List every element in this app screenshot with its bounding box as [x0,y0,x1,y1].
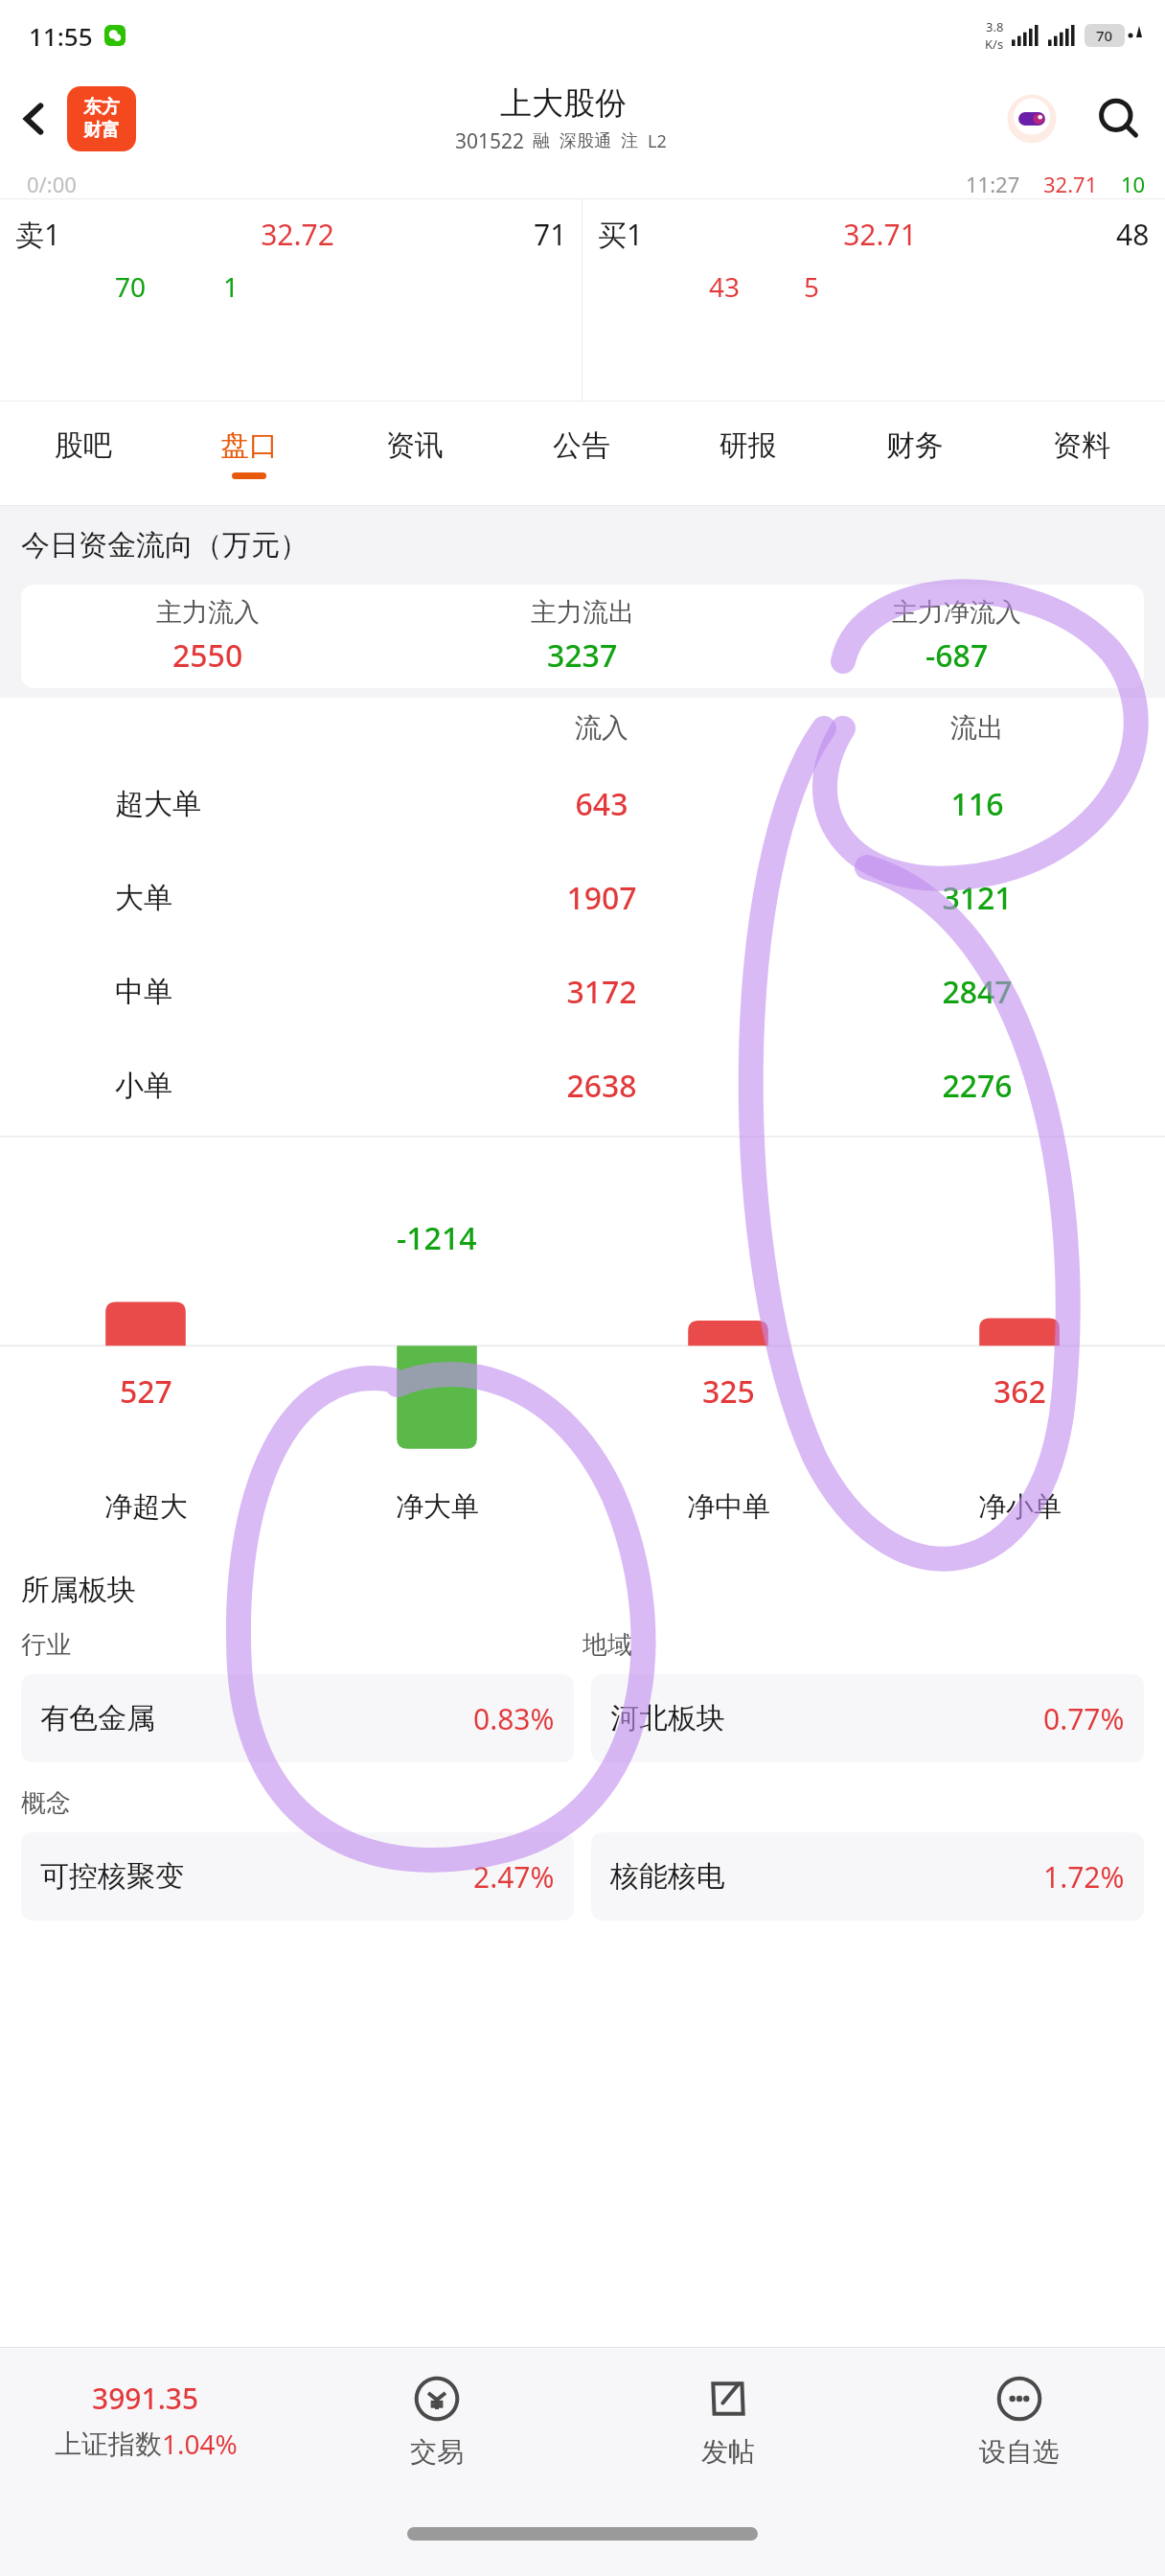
staticText: 净大单 [396,1489,479,1525]
staticText: 主力流入 [156,596,260,629]
button[interactable]: -1214 [291,1133,582,1554]
staticText: 东方 [83,96,120,119]
button[interactable]: 财务 [832,402,998,505]
staticText: 主力净流入 [892,596,1021,629]
button[interactable]: 3991.35 [0,2379,291,2462]
staticText: 行业 [21,1629,582,1661]
staticText: 48 [1116,215,1150,254]
staticText: -1214 [397,1217,477,1259]
staticText: 买1 [598,215,644,254]
staticText: 362 [994,1370,1046,1413]
button[interactable]: 527 [0,1133,291,1554]
staticText: 今日资金流向（万元） [21,527,308,563]
button[interactable]: 研报 [665,402,832,505]
staticText: 公告 [553,427,610,464]
button[interactable]: 中单 [0,945,1165,1039]
staticText: 财富 [83,119,120,142]
button[interactable]: Back [0,71,67,167]
staticText: 3991.35 [92,2379,199,2418]
staticText: 301522 [455,127,525,155]
staticText: 5 [804,268,820,305]
staticText: 643 [414,783,789,825]
staticText: 流出 [789,711,1165,745]
staticText: 1907 [414,877,789,919]
staticText: 概念 [21,1787,71,1819]
staticText: 上证指数 [55,2427,162,2461]
staticText: 1.04% [162,2426,238,2462]
button[interactable]: 河北板块 [591,1674,1144,1762]
staticText: 融 [533,130,550,152]
button[interactable]: 资讯 [331,402,498,505]
staticText: 325 [702,1370,755,1413]
button[interactable]: 盘口 [166,402,331,505]
staticText: 财务 [886,427,944,464]
staticText: 2.47% [473,1857,555,1897]
staticText: 3237 [547,634,618,677]
staticText: 1.72% [1043,1857,1125,1897]
staticText: 3121 [789,877,1165,919]
staticText: 11:55 [29,19,93,53]
staticText: 所属板块 [21,1572,136,1608]
button[interactable]: 可控核聚变 [21,1832,574,1920]
button[interactable]: 交易 [291,2348,582,2492]
staticText: 可控核聚变 [40,1858,184,1895]
staticText: 43 [709,268,741,305]
button[interactable]: 小单 [0,1039,1165,1133]
staticText: 32.72 [61,215,534,254]
staticText: 70 [115,268,147,305]
staticText: 股吧 [55,427,112,464]
staticText: 资料 [1053,427,1110,464]
staticText: 10 [1121,170,1146,198]
staticText: 32.71 [1043,170,1098,198]
button[interactable]: 股吧 [0,402,166,505]
staticText: 2638 [414,1065,789,1107]
staticText: 11:27 [966,170,1020,198]
staticText: 发帖 [701,2435,755,2469]
staticText: 上大股份 [500,83,627,124]
staticText: 净超大 [104,1489,188,1525]
staticText: 2847 [789,971,1165,1013]
staticText: 0/:00 [27,170,77,198]
staticText: 小单 [115,1068,172,1104]
staticText: 资讯 [386,427,444,464]
staticText: 1 [223,268,240,305]
button[interactable]: 362 [874,1133,1165,1554]
staticText: 核能核电 [610,1858,725,1895]
button[interactable]: 资料 [998,402,1165,505]
staticText: 中单 [115,974,172,1010]
staticText: L2 [648,129,667,153]
staticText: 2550 [172,634,243,677]
button[interactable]: 325 [582,1133,874,1554]
button[interactable]: 东方 [67,86,136,151]
button[interactable]: Assistant [991,78,1073,160]
staticText: 2276 [789,1065,1165,1107]
staticText: 研报 [720,427,777,464]
staticText: 超大单 [115,786,201,822]
staticText: 71 [534,215,567,254]
staticText: 净小单 [978,1489,1062,1525]
staticText: 河北板块 [610,1700,725,1736]
staticText: 大单 [115,880,172,916]
button[interactable]: 有色金属 [21,1674,574,1762]
staticText: -687 [925,634,989,677]
staticText: K/s [985,35,1004,53]
button[interactable]: 核能核电 [591,1832,1144,1920]
staticText: 地域 [582,1629,1144,1661]
staticText: 深股通 [560,130,611,152]
button[interactable]: 发帖 [582,2348,874,2492]
button[interactable]: 设自选 [874,2348,1165,2492]
staticText: 卖1 [15,215,61,254]
staticText: 527 [120,1370,172,1413]
staticText: 有色金属 [40,1700,155,1736]
staticText: 0.83% [473,1699,555,1738]
staticText: 盘口 [220,427,278,464]
staticText: 净中单 [687,1489,770,1525]
button[interactable]: 主力流入 [21,585,1144,688]
button[interactable]: 大单 [0,851,1165,945]
button[interactable]: 超大单 [0,757,1165,851]
staticText: 32.71 [644,215,1116,254]
button[interactable]: Search [1073,71,1165,167]
staticText: 主力流出 [531,596,634,629]
button[interactable]: 公告 [498,402,665,505]
staticText: 116 [789,783,1165,825]
